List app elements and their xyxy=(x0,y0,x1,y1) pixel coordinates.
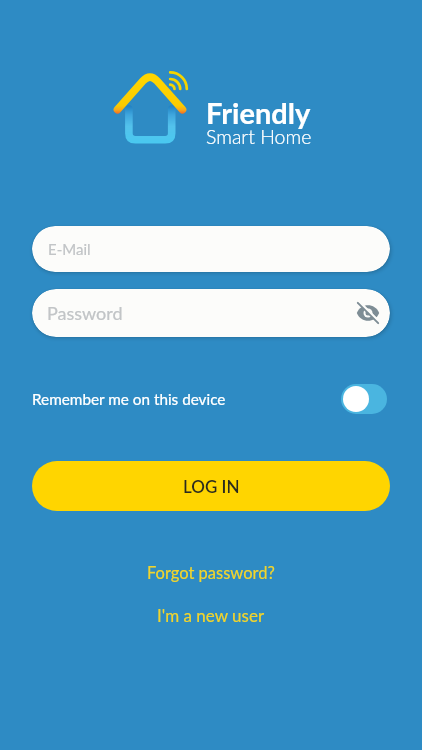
staticText: Smart Home xyxy=(206,125,312,148)
staticText: Remember me on this device xyxy=(32,390,226,408)
staticText: LOG IN xyxy=(183,476,240,496)
button[interactable]: I'm a new user xyxy=(111,601,311,629)
staticText: I'm a new user xyxy=(157,605,265,625)
staticText: Friendly xyxy=(206,95,311,130)
staticText: E-Mail xyxy=(48,240,91,258)
button[interactable]: Forgot password? xyxy=(111,559,311,587)
button[interactable]: LOG IN xyxy=(32,461,390,511)
button[interactable]: Show password xyxy=(351,296,385,330)
button[interactable]: E-Mail xyxy=(32,226,390,272)
staticText: Password xyxy=(47,302,123,324)
staticText: Forgot password? xyxy=(147,563,275,583)
button[interactable]: Remember me on this device xyxy=(341,384,387,414)
button[interactable]: Password xyxy=(32,289,390,337)
